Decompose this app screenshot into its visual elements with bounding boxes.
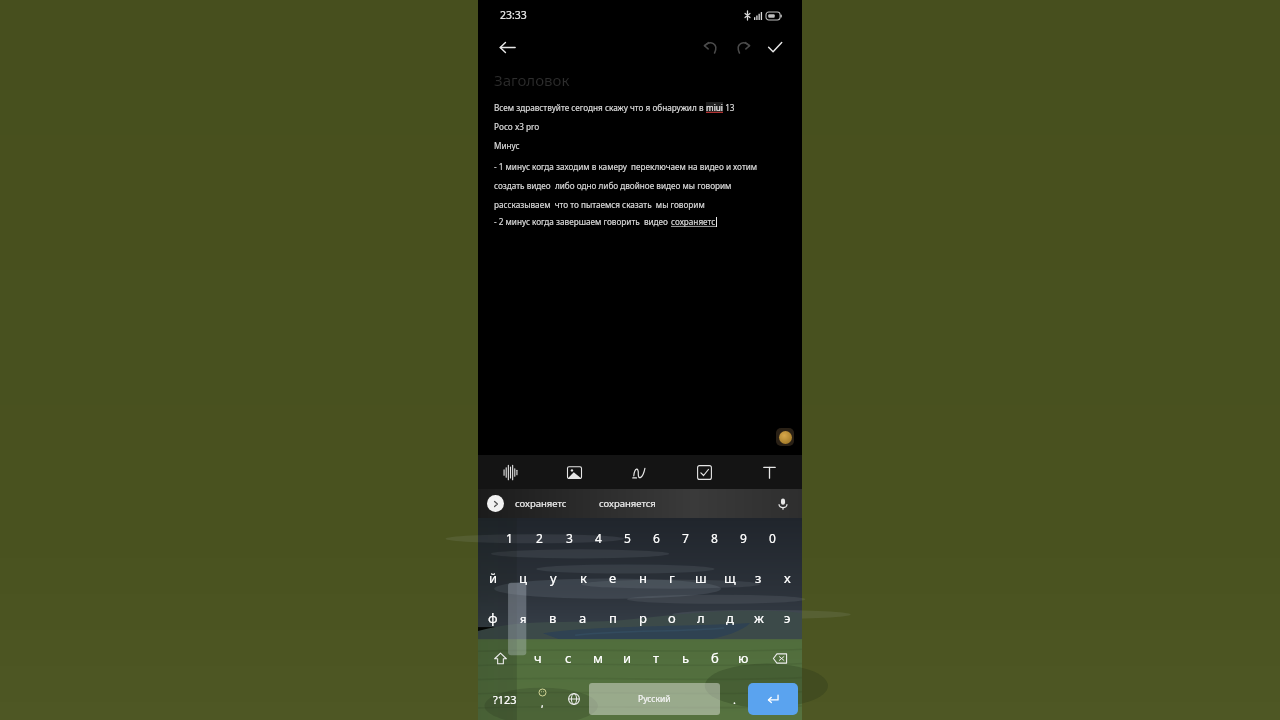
button[interactable]: 8 <box>700 518 729 558</box>
button[interactable]: н <box>628 558 657 598</box>
button[interactable]: с <box>553 638 583 678</box>
staticText: е <box>609 569 617 587</box>
staticText: т <box>653 649 660 667</box>
staticText: 8 <box>711 530 718 546</box>
button[interactable]: Image <box>542 455 607 489</box>
button[interactable]: 4 <box>584 518 613 558</box>
button[interactable]: Format <box>737 455 802 489</box>
button[interactable]: ж <box>744 598 773 638</box>
button[interactable]: Change language <box>558 681 589 717</box>
staticText: й <box>489 569 498 587</box>
button[interactable]: сохраняетс <box>511 497 571 510</box>
staticText: . <box>733 692 736 707</box>
button[interactable]: сохраняется <box>595 497 660 510</box>
button[interactable]: щ <box>715 558 744 598</box>
button[interactable]: д <box>715 598 744 638</box>
button[interactable]: м <box>583 638 613 678</box>
staticText: р <box>639 609 647 627</box>
staticText: д <box>726 609 734 627</box>
staticText: Всем здравствуйте сегодня скажу что я об… <box>494 102 706 113</box>
staticText: н <box>639 569 647 587</box>
button[interactable]: р <box>628 598 657 638</box>
button[interactable]: у <box>538 558 568 598</box>
button[interactable]: 1 <box>494 518 524 558</box>
button[interactable]: ю <box>729 638 758 678</box>
staticText: х <box>784 569 791 587</box>
button[interactable]: 3 <box>554 518 584 558</box>
button[interactable]: к <box>568 558 598 598</box>
staticText: ь <box>682 649 690 667</box>
staticText: л <box>697 609 705 627</box>
staticText: б <box>711 649 719 667</box>
staticText: ц <box>519 569 527 587</box>
button[interactable]: More suggestions <box>487 495 504 512</box>
staticText: а <box>579 609 587 627</box>
button[interactable]: л <box>686 598 715 638</box>
button[interactable]: о <box>657 598 686 638</box>
staticText: и <box>623 649 632 667</box>
button[interactable]: б <box>700 638 729 678</box>
button[interactable]: г <box>657 558 686 598</box>
staticText: 2 <box>536 530 543 546</box>
button[interactable]: а <box>568 598 598 638</box>
button[interactable]: 2 <box>524 518 554 558</box>
button[interactable]: ь <box>671 638 700 678</box>
button[interactable]: Back <box>490 30 524 64</box>
button[interactable]: 7 <box>671 518 700 558</box>
staticText: м <box>593 649 603 667</box>
staticText: с <box>565 649 572 667</box>
staticText: сохраняется <box>599 497 656 510</box>
button[interactable]: Shift <box>478 638 523 678</box>
staticText: 7 <box>682 530 689 546</box>
button[interactable]: Русский <box>589 683 720 715</box>
button[interactable]: Done <box>760 32 790 62</box>
staticText: 6 <box>653 530 660 546</box>
staticText: miui <box>706 102 723 113</box>
button[interactable]: Voice input <box>772 493 794 515</box>
button[interactable]: Comma and emoji <box>527 681 558 717</box>
button[interactable]: Enter <box>748 683 798 715</box>
button[interactable]: т <box>642 638 671 678</box>
button[interactable]: ш <box>686 558 715 598</box>
staticText: - 2 минус когда завершаем говорить видео <box>494 216 671 227</box>
button[interactable]: 5 <box>613 518 642 558</box>
button[interactable]: ч <box>523 638 553 678</box>
button[interactable]: Backspace <box>758 638 802 678</box>
staticText: Заголовок <box>494 70 570 90</box>
button[interactable]: п <box>598 598 628 638</box>
staticText: сохраняетс <box>671 216 716 227</box>
staticText: ю <box>738 649 749 667</box>
staticText: 4 <box>595 530 602 546</box>
button[interactable]: и <box>613 638 642 678</box>
button[interactable]: э <box>773 598 802 638</box>
button[interactable]: в <box>538 598 568 638</box>
button[interactable]: х <box>773 558 802 598</box>
staticText: э <box>784 609 791 627</box>
button[interactable]: Draw <box>607 455 672 489</box>
staticText: 13 <box>723 102 735 113</box>
button[interactable]: 9 <box>729 518 758 558</box>
staticText: щ <box>724 569 736 587</box>
staticText: ж <box>754 609 764 627</box>
button[interactable]: й <box>478 558 508 598</box>
staticText: Poco x3 pro <box>494 121 540 132</box>
button[interactable]: Checklist <box>672 455 737 489</box>
button[interactable]: е <box>598 558 628 598</box>
staticText: - 1 минус когда заходим в камеру переклю… <box>494 161 786 210</box>
button[interactable]: 0 <box>758 518 787 558</box>
button[interactable]: Undo <box>696 32 726 62</box>
button[interactable]: 6 <box>642 518 671 558</box>
button[interactable]: Redo <box>728 32 758 62</box>
staticText: 5 <box>624 530 631 546</box>
button[interactable]: ц <box>508 558 538 598</box>
staticText: у <box>550 569 557 587</box>
staticText: п <box>609 609 617 627</box>
button[interactable]: з <box>744 558 773 598</box>
button[interactable]: Voice <box>478 455 542 489</box>
button[interactable]: . <box>720 681 748 717</box>
button[interactable]: Attachment <box>776 428 794 446</box>
button[interactable]: ф <box>478 598 508 638</box>
button[interactable]: ?123 <box>482 681 527 717</box>
button[interactable]: я <box>508 598 538 638</box>
staticText: г <box>669 569 675 587</box>
